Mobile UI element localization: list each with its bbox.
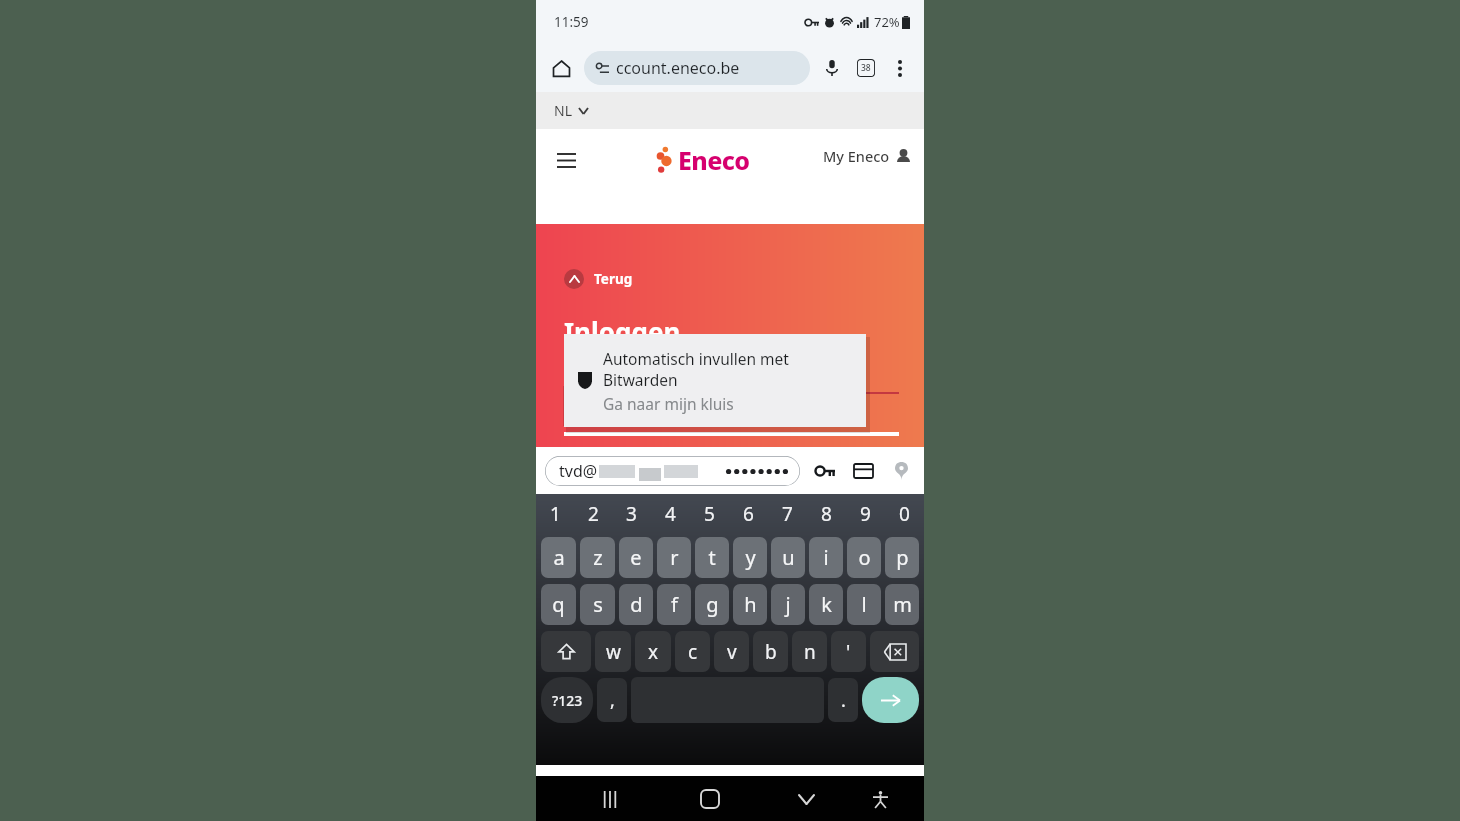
button[interactable]: 6	[729, 494, 768, 534]
button[interactable]: y	[733, 537, 767, 578]
button[interactable]: Hide keyboard	[784, 777, 828, 821]
button[interactable]: c	[675, 631, 710, 672]
button[interactable]: f	[657, 584, 691, 625]
staticText: m	[893, 591, 912, 618]
button[interactable]: v	[714, 631, 749, 672]
staticText: 7	[782, 501, 793, 527]
staticText: c	[688, 639, 698, 665]
button[interactable]	[541, 631, 591, 672]
staticText: z	[593, 544, 603, 571]
button[interactable]: Home	[546, 53, 576, 83]
button[interactable]: w	[595, 631, 631, 672]
button[interactable]: e	[619, 537, 653, 578]
staticText: 0	[899, 501, 910, 527]
button[interactable]: Tabs, 38 open	[850, 52, 882, 84]
staticText: a	[553, 544, 565, 571]
staticText: 5	[704, 501, 715, 527]
staticText: u	[782, 544, 795, 571]
button[interactable]: u	[771, 537, 805, 578]
staticText: '	[846, 639, 851, 665]
staticText: x	[648, 639, 659, 665]
staticText: tvd@	[559, 460, 598, 482]
staticText: Terug	[594, 270, 633, 288]
button[interactable]: tvd@	[545, 456, 800, 486]
button[interactable]: Automatisch invullen met	[564, 334, 866, 427]
button[interactable]: j	[771, 584, 805, 625]
button[interactable]: g	[695, 584, 729, 625]
staticText: s	[593, 591, 603, 618]
button[interactable]: '	[831, 631, 866, 672]
staticText: 2	[588, 501, 599, 527]
staticText: l	[861, 591, 867, 618]
button[interactable]: b	[753, 631, 788, 672]
button[interactable]: 7	[768, 494, 807, 534]
staticText: Eneco	[678, 143, 750, 177]
button[interactable]: Accessibility	[858, 777, 902, 821]
button[interactable]: d	[619, 584, 653, 625]
staticText: 8	[821, 501, 832, 527]
button[interactable]: Enter	[862, 677, 919, 723]
staticText: e	[630, 544, 642, 571]
button[interactable]: o	[847, 537, 881, 578]
staticText: Automatisch invullen met	[603, 348, 789, 369]
staticText: v	[727, 639, 737, 665]
staticText: b	[765, 639, 777, 665]
staticText: 11:59	[554, 13, 589, 31]
button[interactable]: Recent apps	[588, 777, 632, 821]
button[interactable]: ?123	[541, 677, 593, 723]
staticText: 9	[860, 501, 871, 527]
button[interactable]: n	[792, 631, 827, 672]
button[interactable]: Passwords	[812, 458, 838, 484]
button[interactable]: i	[809, 537, 843, 578]
button[interactable]: m	[885, 584, 919, 625]
button[interactable]: x	[635, 631, 671, 672]
button[interactable]	[870, 631, 919, 672]
staticText: j	[785, 591, 791, 618]
staticText: 6	[743, 501, 754, 527]
button[interactable]: a	[541, 537, 576, 578]
button[interactable]: ,	[597, 678, 627, 722]
staticText: Bitwarden	[603, 369, 678, 390]
staticText: ,	[610, 688, 615, 713]
button[interactable]: 8	[807, 494, 846, 534]
button[interactable]: q	[541, 584, 576, 625]
button[interactable]: s	[580, 584, 615, 625]
button[interactable]: 0	[885, 494, 924, 534]
staticText: t	[708, 544, 716, 571]
button[interactable]: More options	[884, 52, 916, 84]
button[interactable]: 2	[574, 494, 612, 534]
button[interactable]: My Eneco	[823, 146, 910, 166]
button[interactable]: .	[828, 678, 858, 722]
button[interactable]: Voice search	[816, 52, 848, 84]
staticText: 1	[550, 501, 561, 527]
button[interactable]: t	[695, 537, 729, 578]
button[interactable]: p	[885, 537, 919, 578]
button[interactable]: Home	[688, 777, 732, 821]
button[interactable]: h	[733, 584, 767, 625]
button[interactable]: l	[847, 584, 881, 625]
staticText: o	[858, 544, 871, 571]
button[interactable]: NL	[554, 101, 588, 120]
button[interactable]: 9	[846, 494, 885, 534]
button[interactable]: 3	[612, 494, 651, 534]
button[interactable]: 1	[536, 494, 574, 534]
staticText: 3	[626, 501, 637, 527]
staticText: k	[821, 591, 832, 618]
staticText: d	[630, 591, 643, 618]
button[interactable]: ccount.eneco.be	[584, 51, 810, 85]
button[interactable]: Terug	[564, 269, 633, 289]
staticText: w	[606, 639, 621, 665]
button[interactable]: Payment methods	[850, 458, 876, 484]
button[interactable]: r	[657, 537, 691, 578]
staticText: 38	[861, 62, 871, 74]
staticText: p	[896, 544, 909, 571]
button[interactable]: Menu	[549, 143, 583, 177]
button[interactable]: Addresses	[888, 458, 914, 484]
staticText: i	[823, 544, 829, 571]
button[interactable]: 4	[651, 494, 690, 534]
button[interactable]: z	[580, 537, 615, 578]
button[interactable]: k	[809, 584, 843, 625]
button[interactable]: 5	[690, 494, 729, 534]
staticText: NL	[554, 101, 572, 120]
